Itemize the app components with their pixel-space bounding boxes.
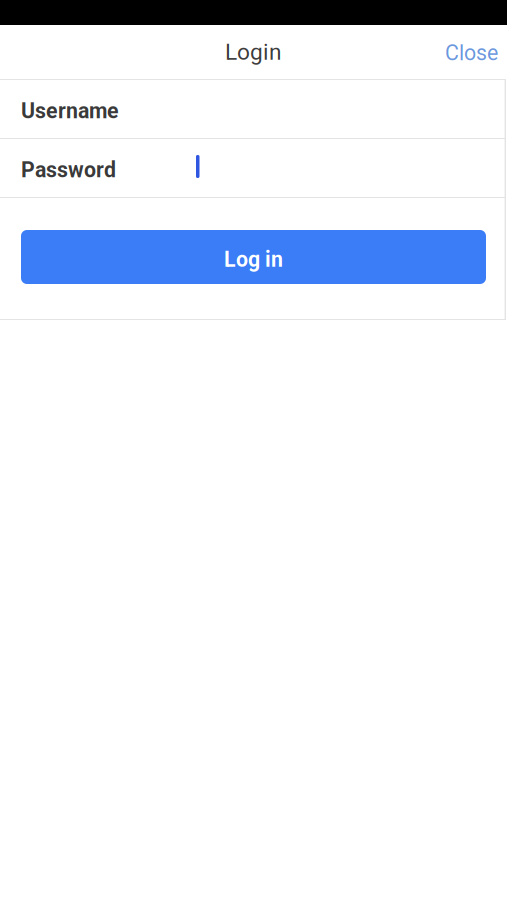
staticText: Close: [445, 40, 498, 65]
staticText: Login: [225, 39, 282, 65]
button[interactable]: Close: [429, 25, 507, 78]
button[interactable]: Username: [0, 80, 507, 138]
button[interactable]: Password: [0, 139, 507, 197]
button[interactable]: Log in: [21, 230, 486, 284]
staticText: Username: [21, 98, 119, 123]
staticText: Log in: [224, 247, 283, 272]
staticText: Password: [21, 157, 116, 182]
